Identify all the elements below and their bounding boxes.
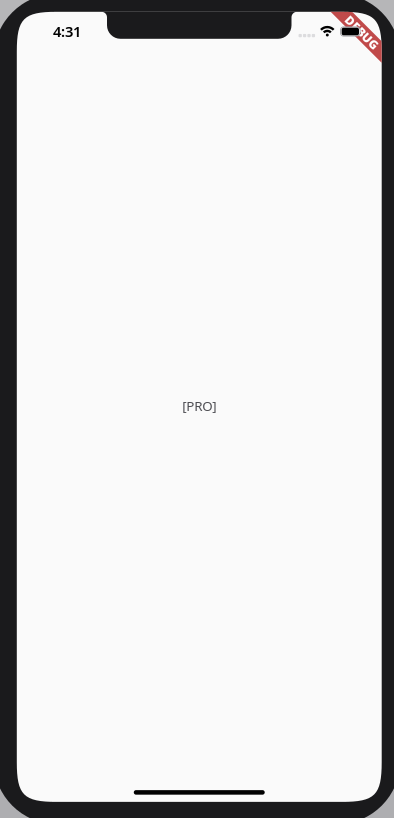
staticText: DEBUG [341,24,383,40]
staticText: 4:31 [53,21,81,41]
staticText: [PRO] [182,397,216,415]
